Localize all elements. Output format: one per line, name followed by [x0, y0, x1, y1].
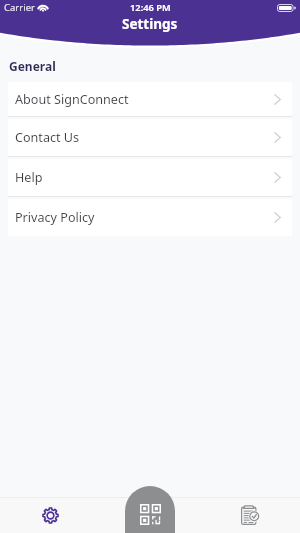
staticText: Settings [122, 15, 178, 33]
staticText: Privacy Policy [15, 209, 95, 226]
button[interactable]: Help [8, 159, 292, 196]
staticText: Help [15, 169, 43, 186]
staticText: General [9, 58, 56, 74]
staticText: About SignConnect [15, 91, 129, 108]
staticText: 12:46 PM [130, 1, 171, 14]
staticText: Contact Us [15, 129, 80, 146]
button[interactable]: About SignConnect [8, 82, 292, 116]
button[interactable]: Contact Us [8, 119, 292, 156]
button[interactable]: Scan QR code [125, 486, 175, 533]
button[interactable]: Privacy Policy [8, 199, 292, 236]
staticText: Carrier [4, 1, 35, 14]
button[interactable]: Documents [200, 497, 300, 533]
button[interactable]: Settings [0, 497, 100, 533]
